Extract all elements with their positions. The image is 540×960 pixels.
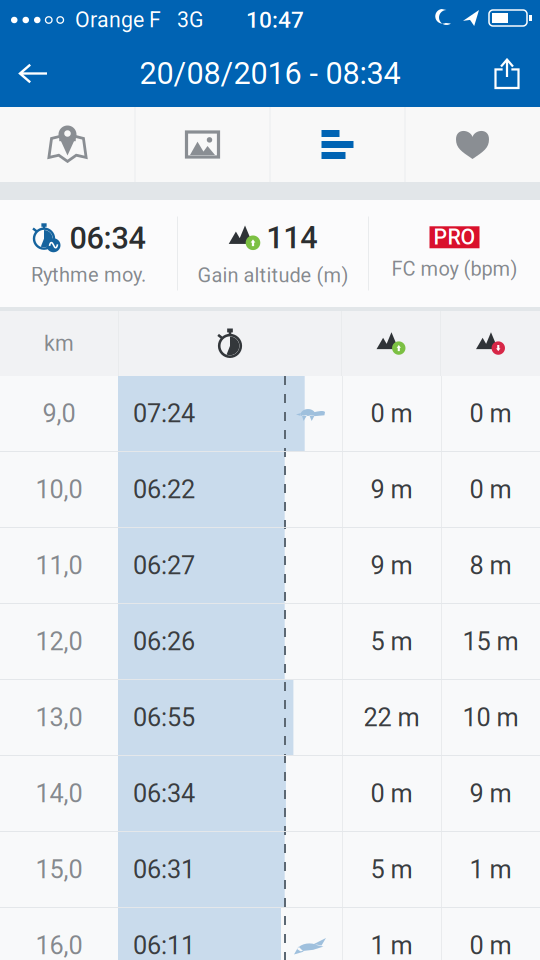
staticText: 5 m — [370, 855, 412, 884]
staticText: 14,0 — [35, 779, 82, 808]
staticText: 12,0 — [35, 627, 82, 656]
staticText: 9 m — [370, 551, 412, 580]
staticText: 114 — [266, 220, 317, 256]
staticText: FC moy (bpm) — [391, 257, 517, 281]
staticText: 13,0 — [35, 703, 82, 732]
staticText: 22 m — [363, 703, 419, 732]
staticText: 10 m — [462, 703, 518, 732]
staticText: 5 m — [370, 627, 412, 656]
button[interactable]: Photos — [135, 107, 269, 182]
staticText: 07:24 — [133, 399, 195, 428]
staticText: Rythme moy. — [31, 263, 146, 287]
staticText: 15,0 — [35, 855, 82, 884]
staticText: 11,0 — [35, 551, 82, 580]
staticText: 20/08/2016 - 08:34 — [139, 55, 400, 91]
button[interactable]: Laps — [270, 107, 404, 182]
staticText: 06:27 — [133, 551, 195, 580]
button[interactable]: Favorite — [405, 107, 539, 182]
staticText: 06:31 — [133, 855, 195, 884]
staticText: 10,0 — [35, 475, 82, 504]
staticText: 06:55 — [133, 703, 195, 732]
staticText: 3G — [177, 7, 204, 32]
staticText: 06:26 — [133, 627, 195, 656]
button[interactable]: Back — [0, 40, 66, 107]
staticText: 8 m — [469, 551, 511, 580]
staticText: km — [44, 331, 74, 356]
staticText: 9,0 — [42, 399, 75, 428]
staticText: 10:47 — [246, 7, 304, 33]
staticText: 06:34 — [133, 779, 195, 808]
staticText: 16,0 — [35, 931, 82, 960]
staticText: 0 m — [469, 931, 511, 960]
staticText: Gain altitude (m) — [197, 264, 348, 287]
staticText: 9 m — [370, 475, 412, 504]
staticText: 1 m — [370, 931, 412, 960]
staticText: 9 m — [469, 779, 511, 808]
button[interactable]: Map — [0, 107, 134, 182]
staticText: Orange F — [75, 7, 161, 32]
staticText: 06:11 — [133, 931, 195, 960]
staticText: 0 m — [469, 399, 511, 428]
button[interactable]: Share — [474, 40, 540, 107]
staticText: 06:34 — [69, 220, 145, 256]
staticText: PRO — [433, 225, 475, 250]
staticText: 0 m — [370, 399, 412, 428]
staticText: 06:22 — [133, 475, 195, 504]
staticText: 0 m — [370, 779, 412, 808]
staticText: 0 m — [469, 475, 511, 504]
staticText: 1 m — [469, 855, 511, 884]
staticText: 15 m — [462, 627, 518, 656]
